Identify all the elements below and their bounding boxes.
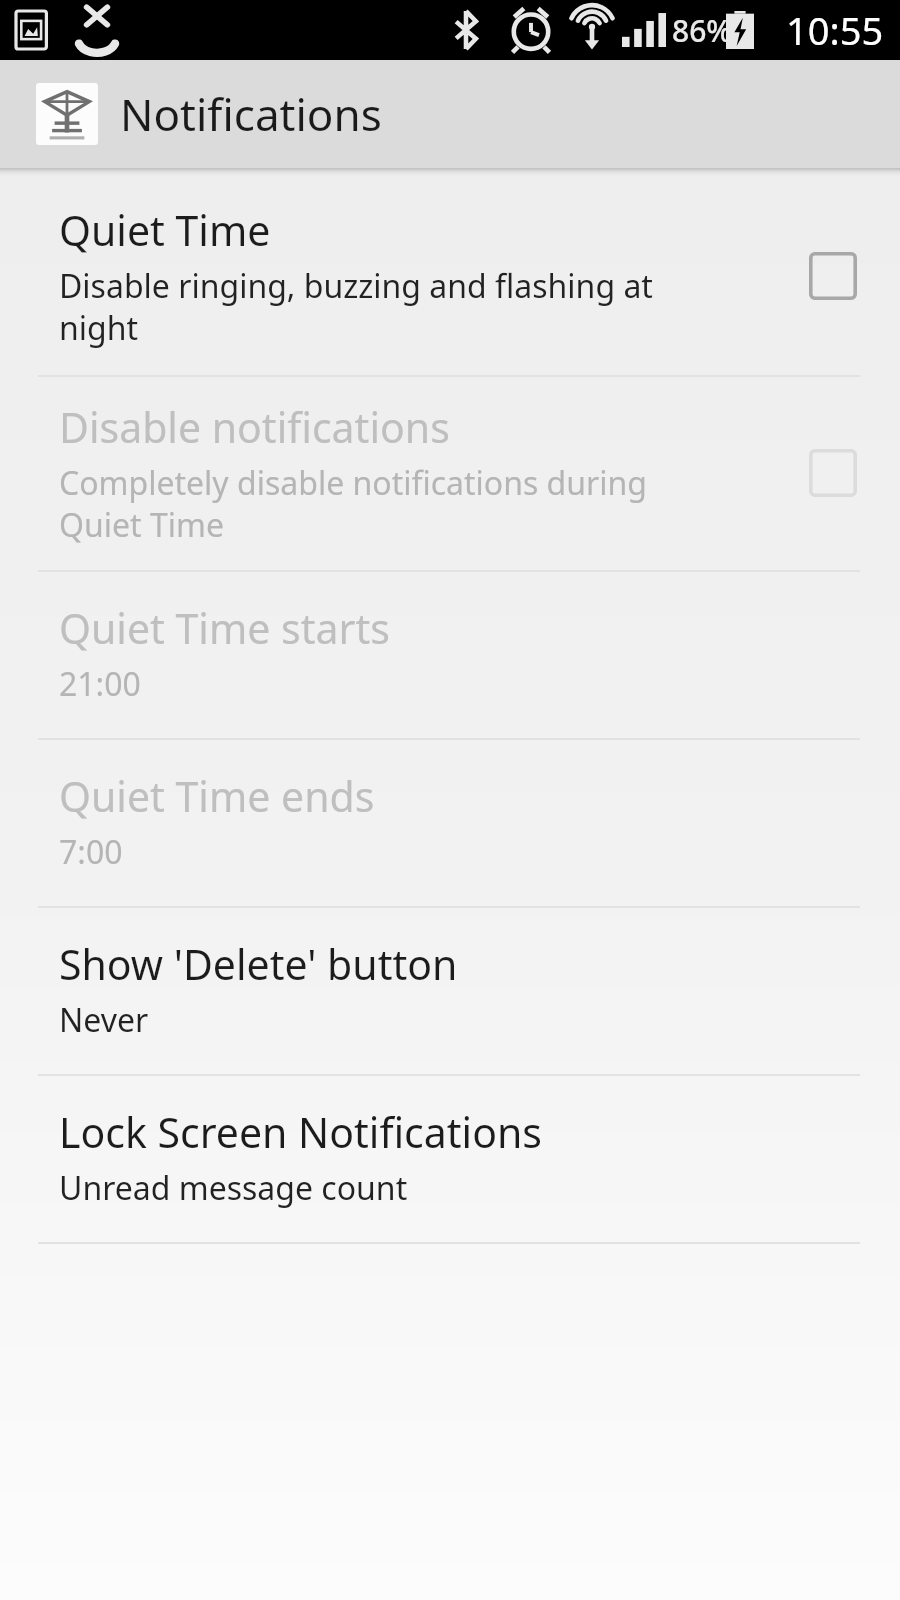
- button[interactable]: Quiet Time: [0, 176, 900, 375]
- staticText: Completely disable notifications during …: [59, 461, 648, 546]
- staticText: Show 'Delete' button: [59, 936, 458, 992]
- staticText: Lock Screen Notifications: [59, 1104, 542, 1160]
- staticText: 7:00: [59, 830, 123, 874]
- button[interactable]: Disable notifications: [0, 377, 900, 570]
- staticText: Quiet Time ends: [59, 768, 375, 824]
- other: Quiet Time: [800, 243, 866, 309]
- staticText: 86%: [672, 10, 732, 51]
- button[interactable]: Show 'Delete' button: [0, 908, 900, 1074]
- other: Disable notifications: [800, 440, 866, 506]
- staticText: Never: [59, 998, 149, 1042]
- button[interactable]: Quiet Time ends: [0, 740, 900, 906]
- button[interactable]: Lock Screen Notifications: [0, 1076, 900, 1242]
- button[interactable]: Quiet Time starts: [0, 572, 900, 738]
- staticText: Disable ringing, buzzing and flashing at…: [59, 264, 653, 349]
- staticText: 21:00: [59, 662, 141, 706]
- staticText: Unread message count: [59, 1166, 408, 1210]
- staticText: Quiet Time: [59, 202, 271, 258]
- staticText: Disable notifications: [59, 399, 450, 455]
- staticText: Notifications: [120, 84, 382, 144]
- staticText: Quiet Time starts: [59, 600, 390, 656]
- staticText: 10:55: [786, 4, 884, 56]
